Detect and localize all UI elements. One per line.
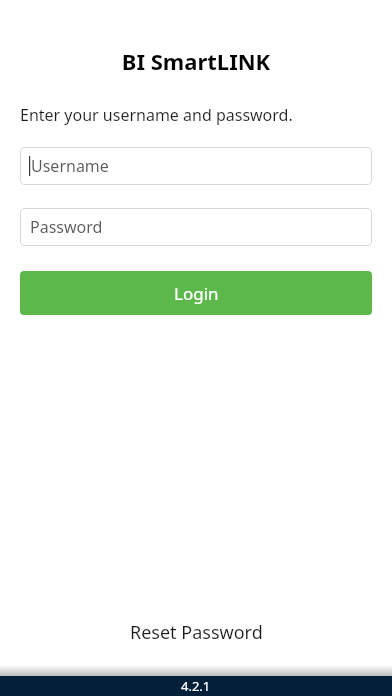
button[interactable]: Login [20,271,372,315]
button[interactable]: Reset Password [0,612,392,653]
other: App version 4.2.1 [0,676,392,696]
button[interactable]: Username [20,147,372,185]
staticText: Login [174,282,219,305]
staticText: Enter your username and password. [20,104,372,126]
staticText: Reset Password [130,620,263,645]
staticText: Username [31,155,109,177]
button[interactable]: Password [20,208,372,246]
staticText: BI SmartLINK [0,46,392,76]
staticText: 4.2.1 [181,677,211,695]
staticText: Password [30,216,103,238]
